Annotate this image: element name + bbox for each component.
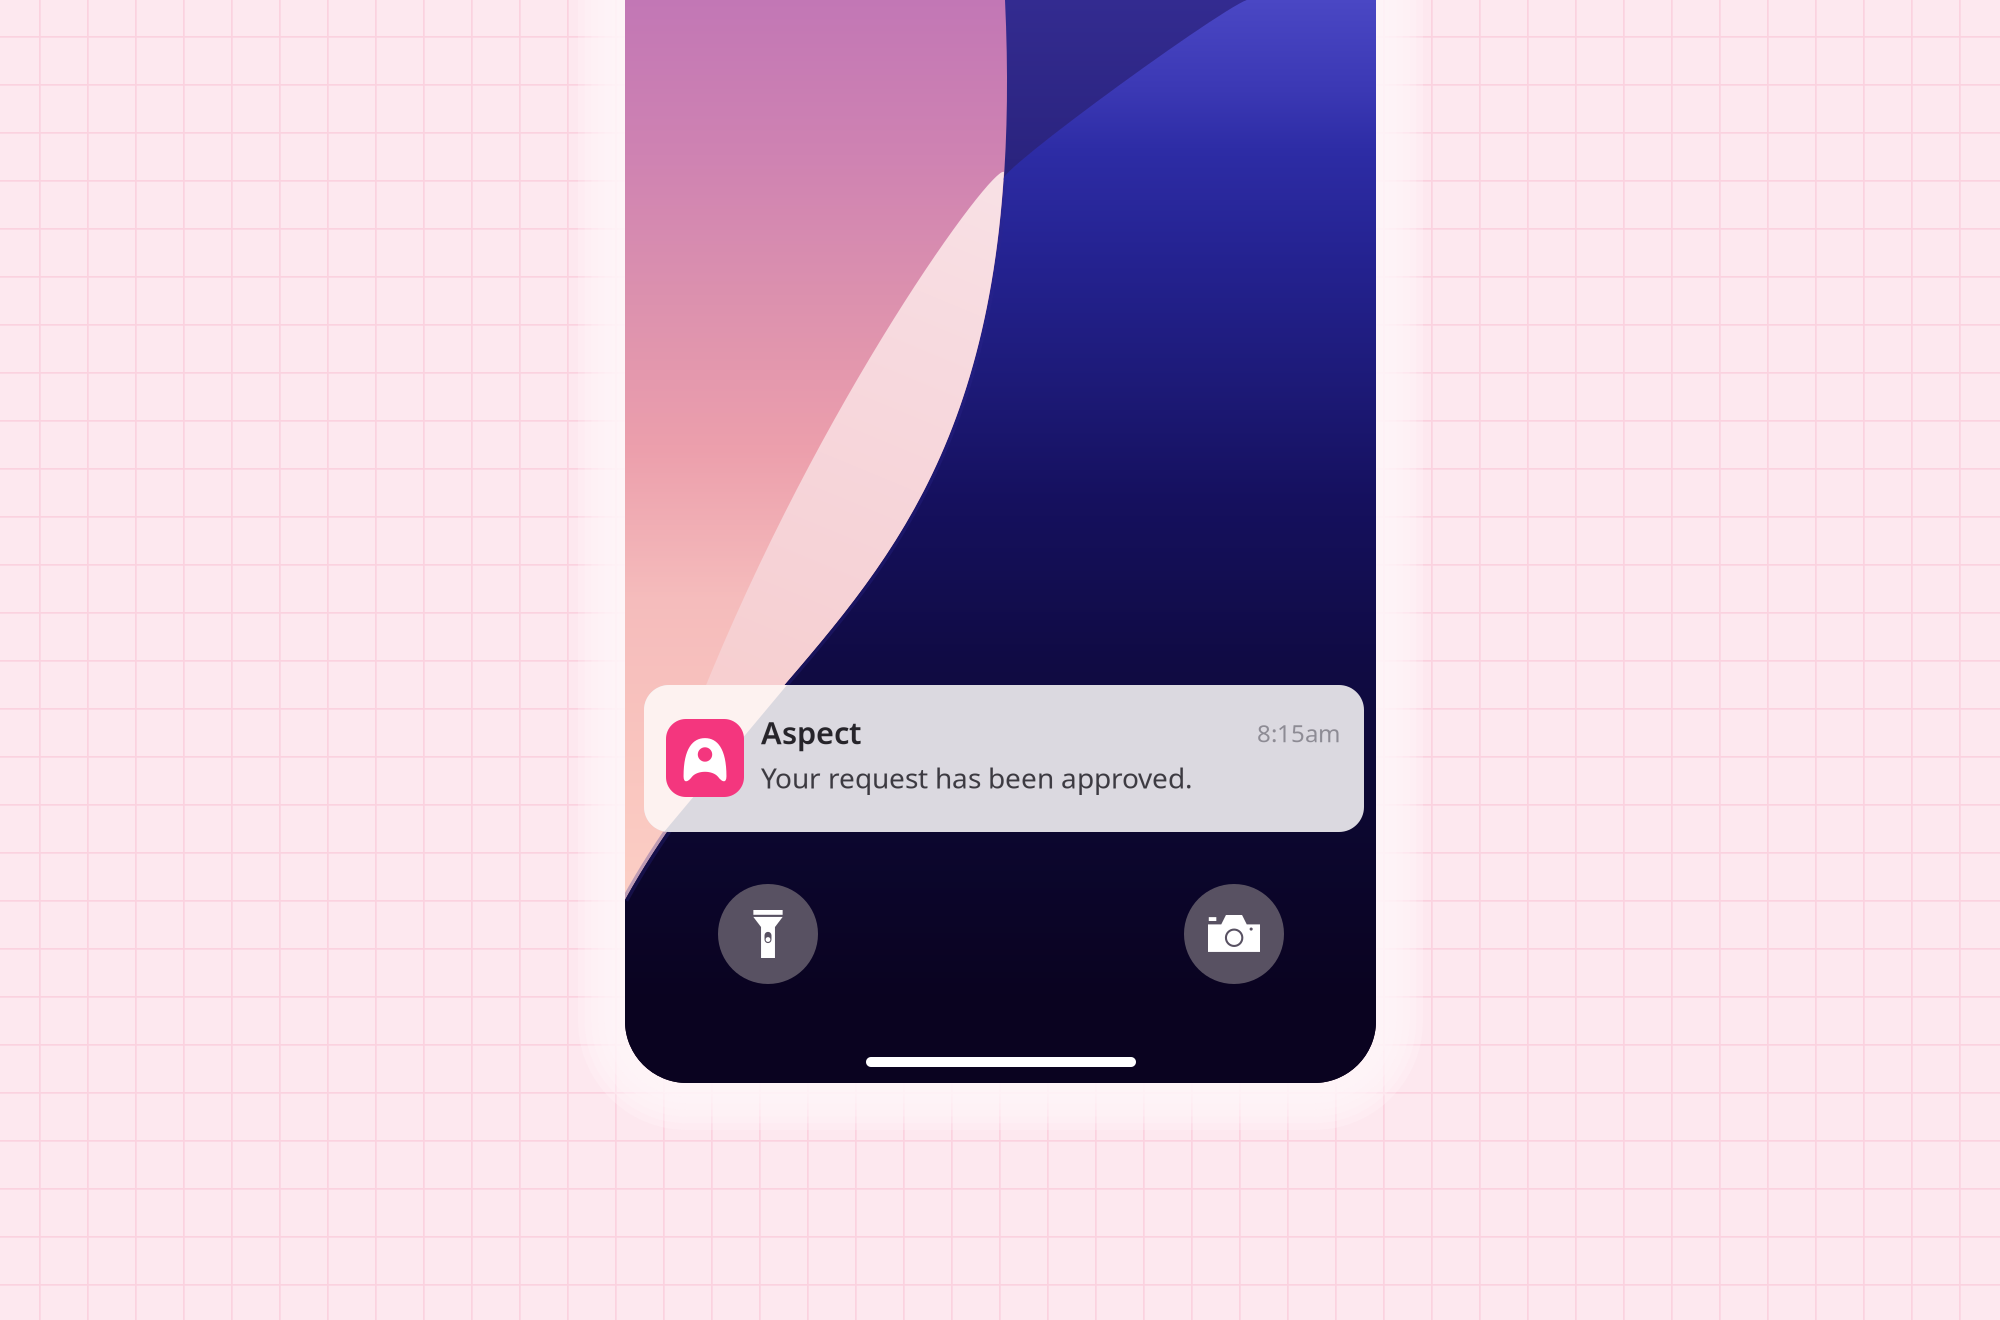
button[interactable]: Aspect <box>644 685 1364 832</box>
staticText: 8:15am <box>1257 717 1340 749</box>
button[interactable]: Flashlight <box>718 884 818 984</box>
staticText: Aspect <box>761 712 861 753</box>
staticText: Your request has been approved. <box>761 759 1193 796</box>
button[interactable]: Camera <box>1184 884 1284 984</box>
